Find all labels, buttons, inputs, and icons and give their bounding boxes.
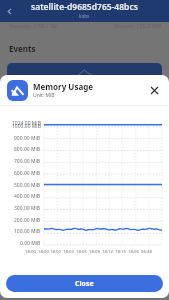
staticText: Memory: - / 1Gi / 1Gi xyxy=(9,23,58,30)
button[interactable]: Close xyxy=(146,82,162,98)
staticText: 900.00 MiB xyxy=(14,135,41,142)
staticText: 700.00 MiB xyxy=(14,158,41,165)
staticText: 06:48 xyxy=(141,248,152,254)
staticText: 100.00 MiB xyxy=(14,228,41,235)
staticText: 18:00 xyxy=(38,248,49,254)
staticText: 500.00 MiB xyxy=(14,182,41,189)
staticText: Memory: 153.21MiB xyxy=(114,23,162,30)
staticText: 1000.00 MiB xyxy=(12,123,41,130)
staticText: 18:12 xyxy=(102,248,113,254)
staticText: 18:00 xyxy=(50,248,61,254)
staticText: 400.00 MiB xyxy=(14,193,41,200)
staticText: 1024.00 MiB xyxy=(12,120,41,127)
staticText: Events xyxy=(9,43,36,54)
staticText: 200.00 MiB xyxy=(14,217,41,224)
staticText: satellite-d9685d765-48bcs xyxy=(31,1,138,13)
staticText: 18:03 xyxy=(63,248,74,254)
staticText: Unit: MiB xyxy=(33,92,55,99)
staticText: 0.00 MiB xyxy=(20,240,41,247)
staticText: 18:00 xyxy=(25,248,36,254)
staticText: kobs xyxy=(79,13,90,19)
staticText: Memory Usage xyxy=(33,81,94,92)
staticText: 18:15 xyxy=(115,248,126,254)
staticText: 800.00 MiB xyxy=(14,146,41,153)
button[interactable]: Close xyxy=(6,275,163,292)
staticText: 18:06 xyxy=(76,248,87,254)
staticText: 300.00 MiB xyxy=(14,205,41,212)
staticText: 18:09 xyxy=(89,248,100,254)
button[interactable]: Back xyxy=(2,3,16,19)
staticText: 18:06 xyxy=(128,248,139,254)
staticText: Close xyxy=(75,279,94,289)
staticText: 600.00 MiB xyxy=(14,170,41,177)
